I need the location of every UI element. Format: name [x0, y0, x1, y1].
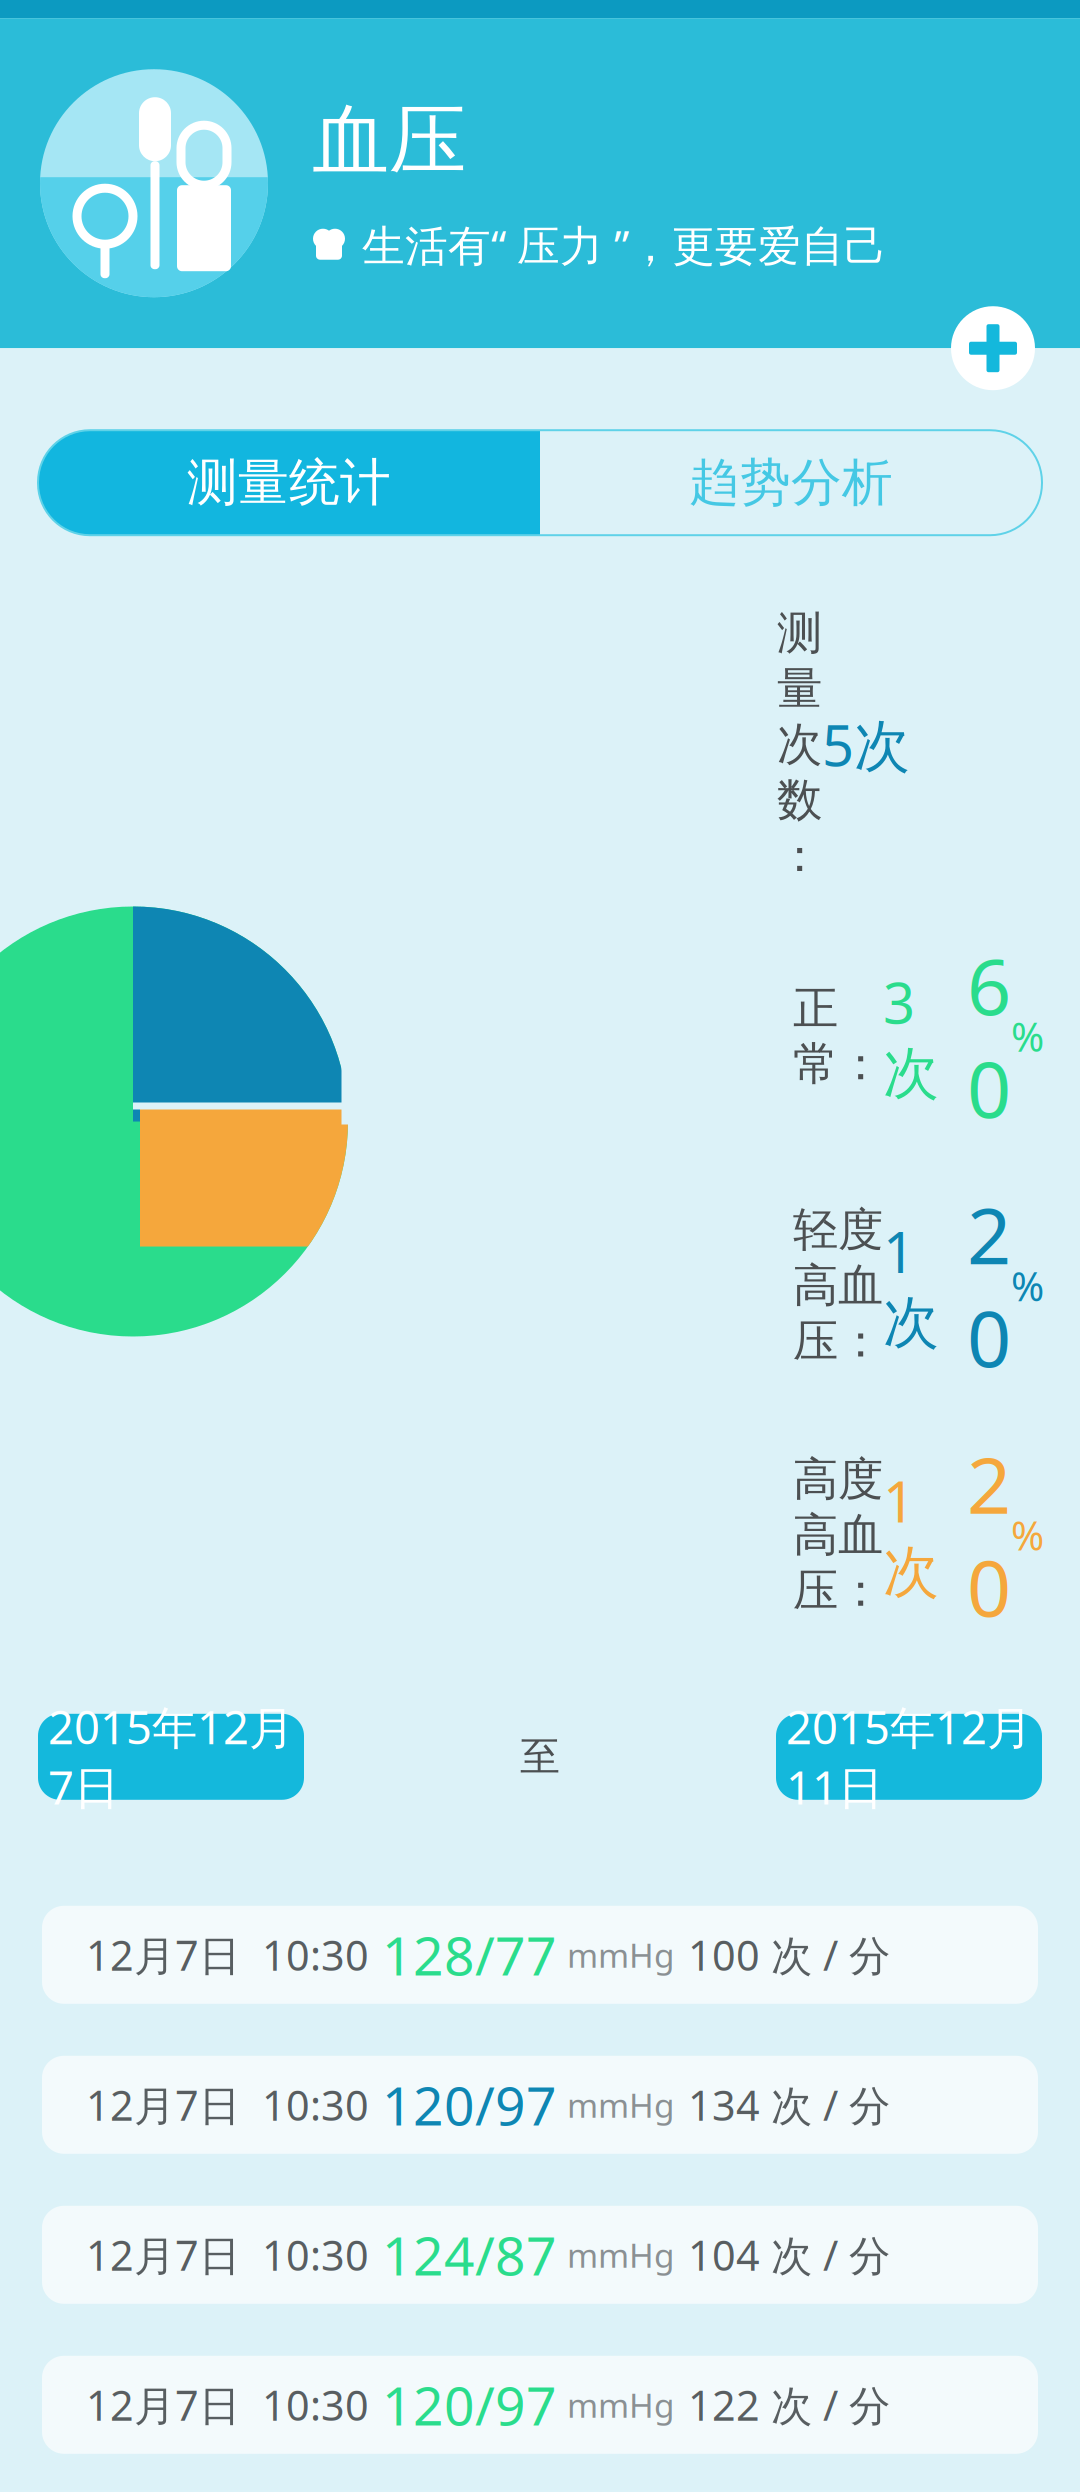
- button[interactable]: 12月7日 10:30: [42, 2356, 1038, 2454]
- staticText: 轻度高血压：: [793, 1202, 883, 1369]
- staticText: mmHg: [567, 2083, 675, 2127]
- staticText: 104 次 / 分: [688, 2227, 890, 2282]
- staticText: 12月7日 10:30: [86, 2227, 369, 2282]
- button[interactable]: 2015年12月7日: [38, 1714, 304, 1800]
- button[interactable]: 测量统计: [38, 430, 540, 535]
- button[interactable]: 12月7日 10:30: [42, 2056, 1038, 2154]
- staticText: 20: [967, 1432, 1011, 1638]
- staticText: 至: [520, 1732, 560, 1781]
- staticText: 生活有“ 压力 ”，更要爱自己: [362, 216, 887, 273]
- staticText: 1次: [883, 1463, 939, 1607]
- staticText: %: [1011, 1508, 1044, 1562]
- staticText: 正常：: [793, 981, 883, 1092]
- staticText: mmHg: [567, 2383, 675, 2427]
- staticText: 124/87: [382, 2219, 557, 2290]
- staticText: 134 次 / 分: [688, 2077, 890, 2132]
- staticText: 120/97: [382, 2069, 557, 2140]
- staticText: 120/97: [382, 2369, 557, 2440]
- staticText: 3次: [883, 965, 939, 1108]
- staticText: mmHg: [567, 2233, 675, 2277]
- staticText: mmHg: [567, 1933, 675, 1977]
- button[interactable]: Add measurement: [951, 306, 1035, 390]
- staticText: 128/77: [382, 1919, 557, 1990]
- staticText: 测量统计: [187, 452, 391, 514]
- button[interactable]: 12月7日 10:30: [42, 1906, 1038, 2004]
- staticText: 2015年12月7日: [48, 1697, 294, 1817]
- staticText: 2015年12月11日: [786, 1697, 1032, 1817]
- staticText: 高度高血压：: [793, 1452, 883, 1619]
- staticText: 5次: [822, 707, 910, 782]
- staticText: 12月7日 10:30: [86, 1927, 369, 1982]
- staticText: 100 次 / 分: [688, 1927, 890, 1982]
- staticText: 趋势分析: [689, 452, 893, 514]
- staticText: 12月7日 10:30: [86, 2077, 369, 2132]
- button[interactable]: 2015年12月11日: [776, 1714, 1042, 1800]
- staticText: 12月7日 10:30: [86, 2377, 369, 2432]
- staticText: 1次: [883, 1214, 939, 1357]
- staticText: 122 次 / 分: [688, 2377, 890, 2432]
- staticText: 血压: [312, 93, 466, 188]
- button[interactable]: 趋势分析: [540, 430, 1042, 535]
- staticText: %: [1011, 1259, 1044, 1312]
- button[interactable]: 12月7日 10:30: [42, 2206, 1038, 2304]
- staticText: 测量次数：: [777, 605, 822, 884]
- staticText: 60: [967, 934, 1011, 1139]
- staticText: %: [1011, 1010, 1044, 1063]
- staticText: 20: [967, 1183, 1011, 1388]
